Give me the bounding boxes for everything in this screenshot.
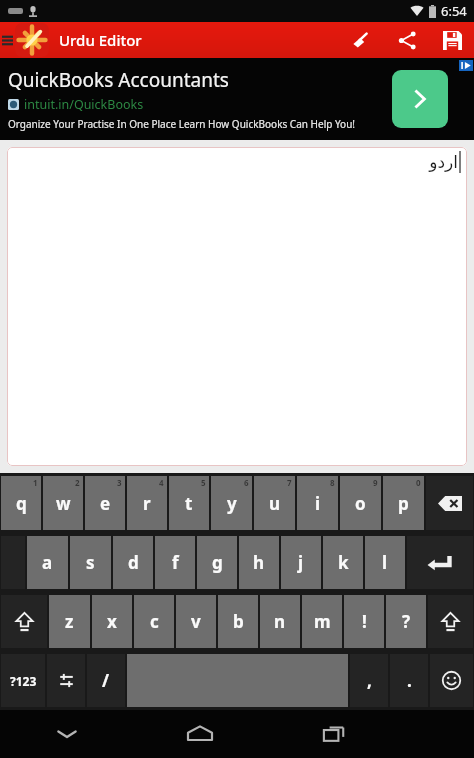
staticText: x (107, 610, 117, 633)
button[interactable]: e (85, 476, 125, 530)
button[interactable]: q (1, 476, 41, 530)
button[interactable]: QuickBooks Accountants (0, 58, 474, 140)
staticText: z (65, 610, 74, 633)
button[interactable]: Shift (1, 595, 47, 648)
staticText: j (298, 551, 304, 574)
staticText: . (407, 669, 412, 692)
button[interactable]: Save (430, 22, 474, 58)
button[interactable]: z (49, 595, 90, 648)
staticText: a (42, 551, 53, 574)
staticText: b (233, 610, 244, 633)
staticText: 0 (416, 477, 421, 488)
button[interactable]: Recent apps (267, 710, 401, 758)
button[interactable]: Open ad (392, 70, 448, 128)
staticText: 2 (75, 477, 80, 488)
button[interactable]: Ad choices (459, 60, 473, 71)
staticText: v (191, 610, 201, 633)
button[interactable]: , (350, 654, 388, 707)
staticText: e (100, 492, 111, 515)
button[interactable]: o (340, 476, 381, 530)
button[interactable]: ?123 (1, 654, 45, 707)
staticText: o (355, 492, 366, 515)
button[interactable]: s (70, 536, 111, 589)
button[interactable]: u (254, 476, 295, 530)
button[interactable]: x (92, 595, 132, 648)
staticText: / (102, 669, 110, 692)
staticText: 7 (287, 477, 292, 488)
button[interactable]: Clear formatting (338, 22, 384, 58)
staticText: Organize Your Practise In One Place Lear… (8, 117, 356, 131)
staticText: 6:54 (441, 2, 467, 20)
button[interactable]: h (239, 536, 279, 589)
button[interactable]: Delete (426, 476, 473, 530)
button[interactable]: . (390, 654, 428, 707)
button[interactable]: y (211, 476, 252, 530)
staticText: h (253, 551, 265, 574)
staticText: اردو (429, 152, 458, 172)
staticText: g (212, 551, 223, 574)
staticText: r (143, 492, 151, 515)
staticText: ? (402, 610, 411, 633)
button[interactable]: v (176, 595, 216, 648)
button[interactable]: f (155, 536, 195, 589)
staticText: d (128, 551, 139, 574)
staticText: 5 (201, 477, 206, 488)
button[interactable]: g (197, 536, 237, 589)
staticText: 9 (373, 477, 378, 488)
button[interactable]: Home (133, 710, 267, 758)
button[interactable]: Emoji (430, 654, 473, 707)
staticText: m (314, 610, 331, 633)
button[interactable]: r (127, 476, 167, 530)
staticText: 4 (159, 477, 164, 488)
staticText: ! (362, 610, 367, 633)
staticText: y (227, 492, 237, 515)
button[interactable]: Input settings (47, 654, 85, 707)
button[interactable]: i (297, 476, 338, 530)
button[interactable]: Shift (428, 595, 473, 648)
staticText: ?123 (10, 673, 37, 689)
staticText: s (86, 551, 95, 574)
staticText: 1 (33, 477, 38, 488)
button[interactable]: c (134, 595, 174, 648)
button[interactable]: Hide keyboard (0, 710, 133, 758)
button[interactable]: a (27, 536, 68, 589)
staticText: intuit.in/QuickBooks (24, 96, 144, 113)
staticText: c (150, 610, 159, 633)
staticText: i (315, 492, 321, 515)
staticText: l (382, 551, 388, 574)
button[interactable]: Urdu Editor icon (15, 23, 49, 57)
button[interactable]: n (260, 595, 300, 648)
staticText: 8 (330, 477, 335, 488)
button[interactable]: j (281, 536, 321, 589)
staticText: 6 (244, 477, 249, 488)
staticText: u (269, 492, 281, 515)
button[interactable]: ! (344, 595, 384, 648)
button[interactable]: b (218, 595, 258, 648)
staticText: p (398, 492, 409, 515)
staticText: f (172, 551, 179, 574)
staticText: w (56, 492, 71, 515)
button[interactable]: Share (384, 22, 430, 58)
staticText: k (338, 551, 349, 574)
staticText: q (16, 492, 27, 515)
button[interactable]: m (302, 595, 342, 648)
button[interactable]: / (87, 654, 125, 707)
staticText: 3 (117, 477, 122, 488)
button[interactable]: Menu (0, 22, 14, 58)
staticText: t (185, 492, 193, 515)
button[interactable]: d (113, 536, 153, 589)
staticText: QuickBooks Accountants (8, 67, 229, 93)
staticText: Urdu Editor (59, 30, 142, 50)
button[interactable]: t (169, 476, 209, 530)
button[interactable]: ? (386, 595, 426, 648)
button[interactable]: Enter (407, 536, 473, 589)
button[interactable]: اردو (7, 147, 467, 466)
button[interactable]: l (365, 536, 405, 589)
staticText: , (367, 669, 372, 692)
button[interactable]: w (43, 476, 83, 530)
staticText: n (274, 610, 286, 633)
button[interactable]: p (383, 476, 424, 530)
button[interactable]: k (323, 536, 363, 589)
